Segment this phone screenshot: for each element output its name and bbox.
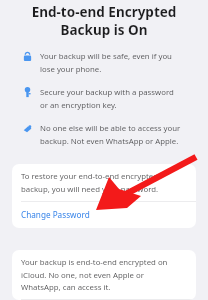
other: Lock bbox=[22, 51, 33, 62]
staticText: Secure your backup with a password or an… bbox=[40, 87, 174, 110]
other: Encrypted chat bbox=[22, 123, 33, 134]
button[interactable]: Change Password bbox=[12, 202, 196, 228]
staticText: To restore your end-to-end encrypted bac… bbox=[21, 171, 159, 194]
staticText: Your backup is end-to-end encrypted on i… bbox=[21, 257, 168, 292]
staticText: Change Password bbox=[21, 209, 90, 220]
other: Key bbox=[22, 87, 33, 98]
staticText: No one else will be able to access your … bbox=[40, 123, 181, 146]
staticText: End-to-end Encrypted Backup is On bbox=[10, 3, 198, 39]
staticText: Your backup will be safe, even if you lo… bbox=[40, 51, 172, 74]
